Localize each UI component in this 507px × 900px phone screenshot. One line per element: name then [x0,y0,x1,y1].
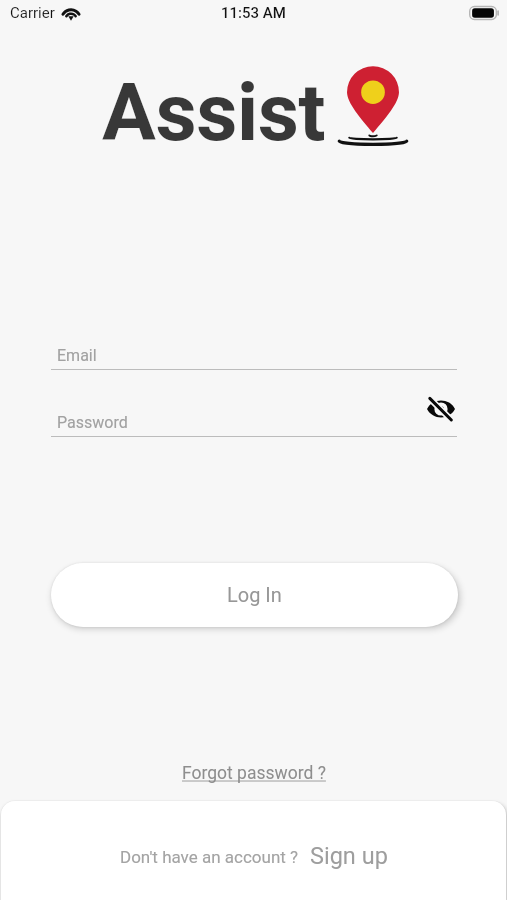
button[interactable]: Forgot password ? [176,760,332,787]
staticText: Forgot password ? [182,763,326,784]
staticText: Assist [102,66,326,160]
button[interactable]: Show password [420,389,462,429]
staticText: Sign up [310,842,388,870]
staticText: 11:53 AM [0,4,507,22]
button[interactable]: Password [51,407,457,437]
button[interactable]: Email [51,340,457,370]
staticText: Email [57,346,97,365]
staticText: Carrier [10,4,55,22]
button[interactable]: Sign up [310,842,388,870]
staticText: Log In [227,583,282,606]
staticText: Password [57,413,128,432]
staticText: Don't have an account ? [120,847,299,867]
button[interactable]: Log In [51,563,458,627]
